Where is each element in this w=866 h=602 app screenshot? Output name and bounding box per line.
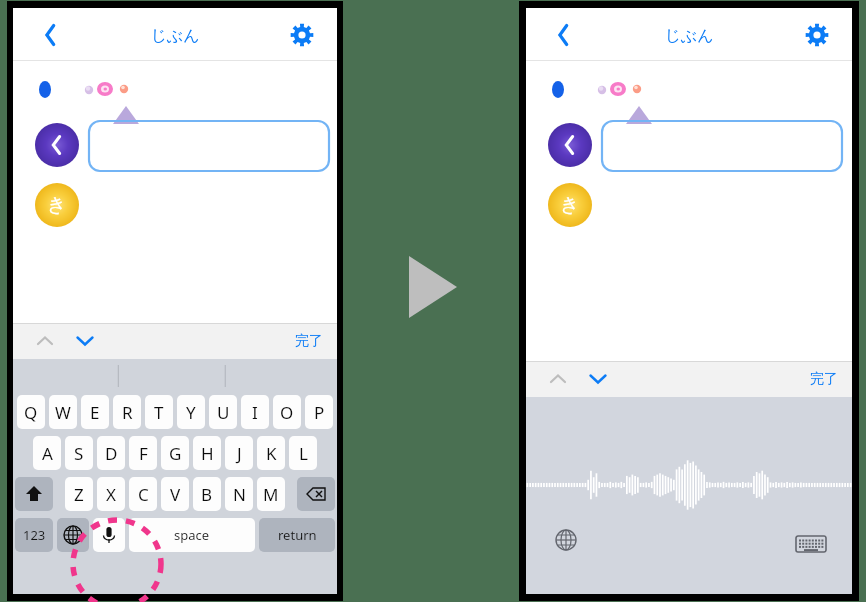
button[interactable]: I bbox=[241, 395, 269, 429]
button[interactable]: Settings bbox=[285, 18, 319, 52]
button[interactable]: J bbox=[225, 436, 253, 470]
button[interactable]: Settings bbox=[800, 18, 834, 52]
staticText: G bbox=[169, 442, 182, 465]
button[interactable]: X bbox=[97, 477, 125, 511]
button[interactable]: 完了 bbox=[295, 323, 323, 359]
button[interactable]: Q bbox=[17, 395, 45, 429]
button[interactable]: Shift bbox=[15, 477, 53, 511]
staticText: Q bbox=[24, 401, 38, 424]
staticText: space bbox=[174, 526, 210, 544]
staticText: N bbox=[233, 483, 246, 506]
button[interactable]: Z bbox=[65, 477, 93, 511]
staticText: 123 bbox=[23, 526, 46, 544]
staticText: き bbox=[47, 193, 67, 217]
staticText: U bbox=[217, 401, 230, 424]
staticText: 完了 bbox=[810, 370, 838, 388]
button[interactable]: B bbox=[193, 477, 221, 511]
button[interactable]: H bbox=[193, 436, 221, 470]
staticText: V bbox=[170, 483, 181, 506]
staticText: じぶん bbox=[664, 26, 714, 46]
button[interactable]: Previous field bbox=[25, 323, 65, 359]
staticText: Z bbox=[74, 483, 84, 506]
button[interactable]: Y bbox=[177, 395, 205, 429]
button[interactable]: E bbox=[81, 395, 109, 429]
button[interactable]: Back bbox=[548, 18, 582, 52]
staticText: H bbox=[201, 442, 214, 465]
button[interactable]: Next field bbox=[578, 361, 618, 397]
button[interactable]: Switch keyboard bbox=[550, 524, 582, 556]
staticText: C bbox=[138, 483, 149, 506]
staticText: R bbox=[122, 401, 133, 424]
button[interactable]: Hint bbox=[548, 183, 592, 227]
button[interactable]: G bbox=[161, 436, 189, 470]
staticText: F bbox=[139, 442, 148, 465]
button[interactable]: Delete bbox=[297, 477, 335, 511]
staticText: W bbox=[55, 401, 71, 424]
staticText: K bbox=[266, 442, 277, 465]
staticText: き bbox=[560, 193, 580, 217]
button[interactable]: O bbox=[273, 395, 301, 429]
button[interactable]: U bbox=[209, 395, 237, 429]
button[interactable]: space bbox=[129, 518, 255, 552]
staticText: J bbox=[237, 442, 242, 465]
button[interactable]: Avatar bbox=[35, 123, 79, 167]
button[interactable]: Return bbox=[259, 518, 335, 552]
button[interactable]: D bbox=[97, 436, 125, 470]
button[interactable]: S bbox=[65, 436, 93, 470]
button[interactable]: R bbox=[113, 395, 141, 429]
staticText: P bbox=[314, 401, 325, 424]
staticText: A bbox=[42, 442, 53, 465]
staticText: 完了 bbox=[295, 332, 323, 350]
button[interactable]: K bbox=[257, 436, 285, 470]
button[interactable]: W bbox=[49, 395, 77, 429]
button[interactable]: 完了 bbox=[810, 361, 838, 397]
button[interactable]: A bbox=[33, 436, 61, 470]
staticText: S bbox=[74, 442, 84, 465]
staticText: L bbox=[299, 442, 308, 465]
staticText: Y bbox=[186, 401, 196, 424]
button[interactable]: T bbox=[145, 395, 173, 429]
button[interactable]: Next field bbox=[65, 323, 105, 359]
staticText: じぶん bbox=[150, 26, 200, 46]
staticText: return bbox=[278, 526, 317, 544]
staticText: X bbox=[106, 483, 116, 506]
button[interactable]: Show keyboard bbox=[794, 532, 828, 556]
staticText: M bbox=[263, 483, 279, 506]
button[interactable]: Avatar bbox=[548, 123, 592, 167]
button[interactable]: F bbox=[129, 436, 157, 470]
staticText: D bbox=[105, 442, 118, 465]
staticText: I bbox=[252, 401, 258, 424]
staticText: E bbox=[90, 401, 100, 424]
button[interactable]: Hint bbox=[35, 183, 79, 227]
button[interactable]: M bbox=[257, 477, 285, 511]
staticText: T bbox=[154, 401, 164, 424]
button[interactable]: P bbox=[305, 395, 333, 429]
button[interactable]: V bbox=[161, 477, 189, 511]
button[interactable]: Switch keyboard bbox=[57, 518, 89, 552]
button[interactable]: Back bbox=[35, 18, 69, 52]
button[interactable]: Previous field bbox=[538, 361, 578, 397]
button[interactable]: Numbers bbox=[15, 518, 53, 552]
staticText: O bbox=[280, 401, 294, 424]
button[interactable]: Dictate bbox=[93, 518, 125, 552]
button[interactable]: C bbox=[129, 477, 157, 511]
button[interactable]: L bbox=[289, 436, 317, 470]
button[interactable]: N bbox=[225, 477, 253, 511]
staticText: B bbox=[201, 483, 213, 506]
